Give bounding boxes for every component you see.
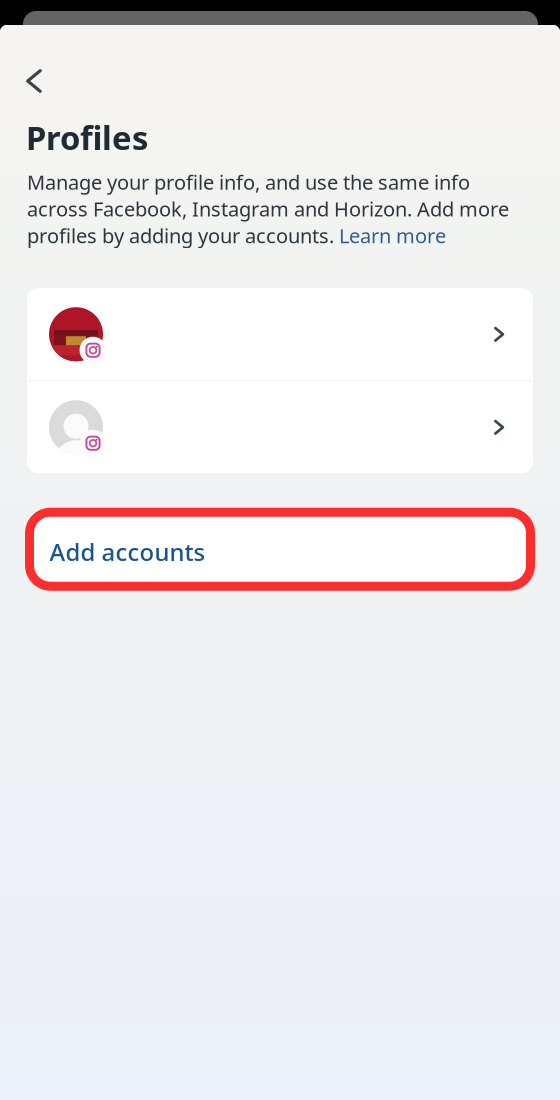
staticText: Manage your profile info, and use the sa…	[27, 168, 470, 196]
staticText: profiles by adding your accounts.	[27, 222, 339, 249]
button[interactable]: Back	[10, 57, 58, 105]
staticText: across Facebook, Instagram and Horizon. …	[27, 195, 509, 222]
staticText: Learn more	[339, 222, 446, 249]
button[interactable]: Second profile	[27, 381, 533, 473]
staticText: Profiles	[26, 115, 148, 159]
button[interactable]: First profile	[27, 288, 533, 380]
staticText: Add accounts	[49, 535, 205, 568]
button[interactable]: Add accounts	[25, 507, 535, 591]
button[interactable]: Learn more	[339, 222, 446, 249]
